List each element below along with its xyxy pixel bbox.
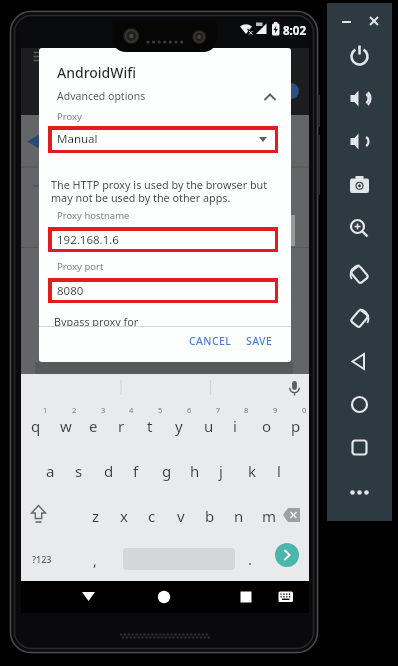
staticText: g [162,461,172,481]
staticText: 2 [72,405,77,415]
staticText: v [177,506,185,526]
staticText: 6 [187,405,192,415]
button[interactable] [338,12,356,30]
staticText: 8:02 [283,23,306,39]
staticText: 0 [302,405,307,415]
staticText: b [205,506,215,526]
staticText: m [262,506,277,526]
button[interactable] [346,85,373,112]
staticText: n [234,506,244,526]
staticText: AndroidWifi [57,63,137,82]
staticText: y [175,416,183,436]
button[interactable] [346,42,373,69]
button[interactable] [26,504,52,526]
staticText: s [75,461,83,481]
staticText: Bypass proxy for [54,314,139,327]
staticText: 8 [244,405,249,415]
button[interactable] [156,589,172,605]
staticText: u [204,416,214,436]
staticText: 7 [216,405,221,415]
button[interactable] [346,434,373,461]
button[interactable] [346,172,373,199]
button[interactable] [346,348,373,375]
staticText: 4 [129,405,134,415]
button[interactable] [346,479,373,506]
staticText: ?123 [32,553,52,565]
staticText: x [120,506,128,526]
button[interactable] [275,543,299,567]
staticText: l [277,461,281,481]
staticText: Proxy [57,110,82,123]
staticText: Advanced options [57,89,146,103]
staticText: Manual [57,131,98,147]
staticText: Proxy hostname [57,209,130,222]
button[interactable] [276,504,304,526]
button[interactable] [365,12,383,30]
staticText: 8080 [57,283,84,299]
staticText: The HTTP proxy is used by the browser bu… [51,177,268,192]
button[interactable] [278,591,294,603]
staticText: j [219,461,223,481]
button[interactable]: Manual [48,126,278,153]
staticText: h [190,461,200,481]
staticText: r [118,416,125,436]
staticText: 9 [273,405,278,415]
staticText: i [233,416,237,436]
button[interactable] [77,590,100,605]
button[interactable]: 8080 [48,278,278,303]
button[interactable] [346,391,373,418]
button[interactable] [346,261,373,288]
staticText: SAVE [246,334,273,348]
staticText: d [104,461,114,481]
staticText: f [133,461,139,481]
staticText: . [248,549,253,569]
button[interactable] [346,215,373,242]
staticText: z [92,506,100,526]
staticText: k [248,461,257,481]
staticText: may not be used by the other apps. [51,190,231,205]
staticText: a [46,461,55,481]
staticText: p [291,416,301,436]
staticText: 1 [43,405,48,415]
button[interactable]: SAVE [246,334,274,350]
staticText: CANCEL [189,334,232,348]
button[interactable]: 192.168.1.6 [48,227,278,252]
button[interactable]: CANCEL [189,334,241,350]
staticText: e [89,416,98,436]
staticText: q [31,416,41,436]
button[interactable] [239,590,253,604]
button[interactable] [346,305,373,332]
staticText: , [93,551,97,570]
staticText: o [262,416,272,436]
staticText: 192.168.1.6 [57,232,119,248]
button[interactable] [346,128,373,155]
staticText: 5 [158,405,163,415]
staticText: c [148,506,156,526]
staticText: 3 [101,405,106,415]
staticText: w [60,416,72,436]
staticText: t [147,416,153,436]
staticText: Proxy port [57,260,104,273]
